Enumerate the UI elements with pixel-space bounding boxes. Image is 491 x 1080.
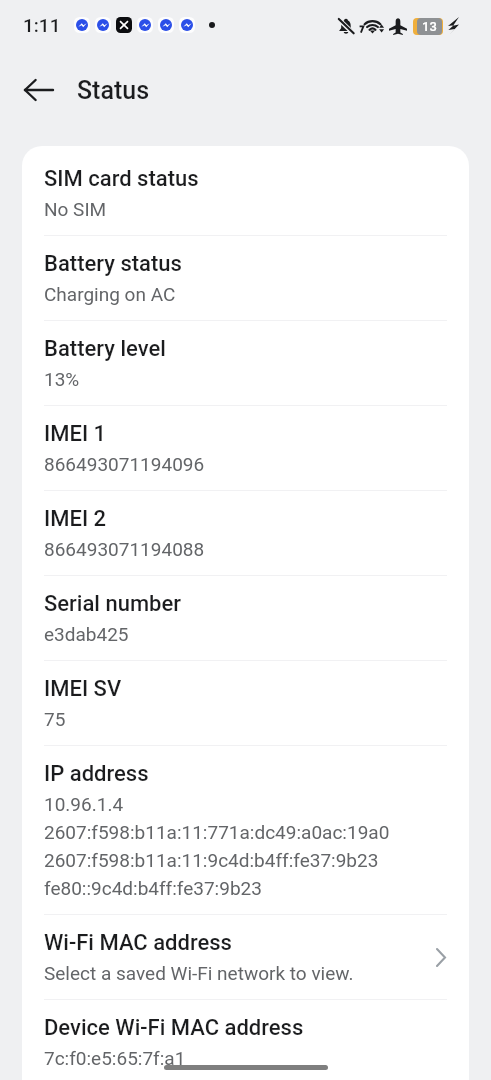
staticText: 866493071194088 <box>44 534 205 562</box>
staticText: 13% <box>44 364 80 392</box>
staticText: Device Wi-Fi MAC address <box>44 1015 304 1041</box>
button[interactable]: Battery status <box>22 236 469 320</box>
staticText: Wi-Fi MAC address <box>44 930 232 956</box>
staticText: Serial number <box>44 591 182 617</box>
staticText: IMEI SV <box>44 676 122 702</box>
button[interactable]: IMEI 2 <box>22 491 469 575</box>
button[interactable]: IMEI 1 <box>22 406 469 490</box>
staticText: Battery level <box>44 336 166 362</box>
button[interactable]: Device Wi-Fi MAC address <box>22 1000 469 1080</box>
staticText: Select a saved Wi-Fi network to view. <box>44 958 354 986</box>
button[interactable]: Wi-Fi MAC address <box>22 915 469 999</box>
button[interactable]: IMEI SV <box>22 661 469 745</box>
button[interactable]: Back <box>19 71 57 109</box>
staticText: e3dab425 <box>44 619 129 647</box>
staticText: SIM card status <box>44 166 199 192</box>
staticText: Charging on AC <box>44 279 176 307</box>
staticText: Status <box>77 76 150 105</box>
button[interactable]: IP address <box>22 746 469 914</box>
staticText: 10.96.1.4 2607:f598:b11a:11:771a:dc49:a0… <box>44 789 390 901</box>
staticText: 75 <box>44 704 66 732</box>
button[interactable]: Serial number <box>22 576 469 660</box>
staticText: 13 <box>422 19 437 34</box>
staticText: IP address <box>44 761 149 787</box>
button[interactable]: SIM card status <box>22 151 469 235</box>
staticText: 7c:f0:e5:65:7f:a1 <box>44 1043 186 1067</box>
staticText: IMEI 1 <box>44 421 107 447</box>
staticText: 1:11 <box>23 14 61 36</box>
staticText: 866493071194096 <box>44 449 205 477</box>
staticText: No SIM <box>44 194 107 222</box>
button[interactable]: Battery level <box>22 321 469 405</box>
staticText: Battery status <box>44 251 182 277</box>
staticText: IMEI 2 <box>44 506 107 532</box>
